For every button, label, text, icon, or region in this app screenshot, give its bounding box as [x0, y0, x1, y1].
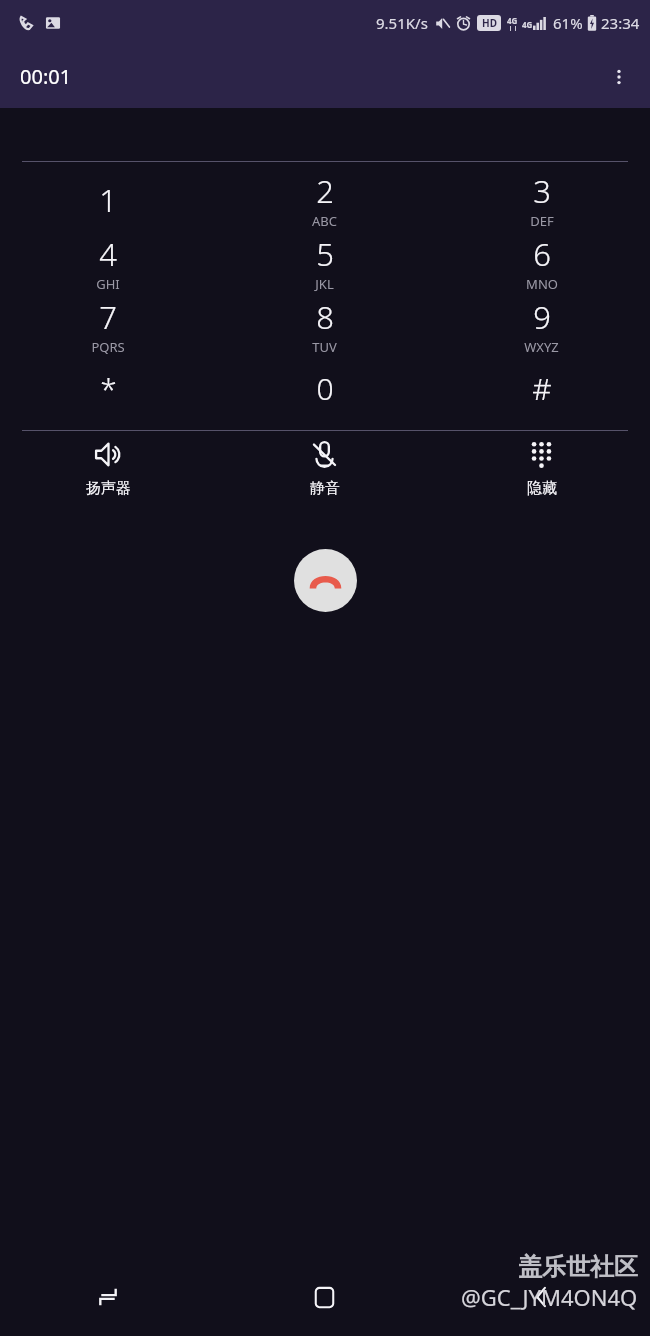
staticText: JKL [315, 275, 334, 293]
staticText: 2 [316, 170, 334, 212]
button[interactable]: 5 [216, 231, 433, 294]
button[interactable]: Recents [0, 1258, 216, 1336]
button[interactable]: 扬声器 [0, 439, 216, 507]
staticText: 1 [99, 179, 117, 221]
button[interactable]: 8 [216, 294, 433, 357]
staticText: 23:34 [601, 13, 640, 33]
staticText: 扬声器 [86, 479, 131, 498]
staticText: 0 [316, 368, 334, 409]
button[interactable]: Home [216, 1258, 433, 1336]
staticText: @GC_JYM4ON4Q [461, 1282, 638, 1312]
button[interactable]: 1 [0, 168, 216, 231]
staticText: 7 [99, 296, 117, 338]
staticText: 9.51K/s [376, 13, 428, 33]
button[interactable]: 2 [216, 168, 433, 231]
button[interactable]: 9 [433, 294, 650, 357]
button[interactable]: End call [294, 549, 357, 612]
staticText: 盖乐世社区 [518, 1252, 638, 1282]
staticText: HD [482, 16, 497, 30]
staticText: MNO [526, 275, 558, 293]
button[interactable]: 0 [216, 357, 433, 420]
button[interactable]: 3 [433, 168, 650, 231]
staticText: 00:01 [20, 63, 72, 90]
staticText: # [532, 368, 552, 409]
staticText: 9 [533, 296, 551, 338]
staticText: WXYZ [524, 338, 559, 356]
button[interactable]: 隐藏 [433, 439, 650, 507]
staticText: PQRS [91, 338, 125, 356]
staticText: ABC [312, 212, 337, 230]
staticText: 4G [507, 15, 518, 26]
button[interactable]: * [0, 357, 216, 420]
staticText: 4 [99, 233, 117, 275]
button[interactable]: 4 [0, 231, 216, 294]
button[interactable]: 6 [433, 231, 650, 294]
button[interactable]: 静音 [216, 439, 433, 507]
staticText: 3 [533, 170, 551, 212]
staticText: 5 [316, 233, 334, 275]
staticText: 6 [533, 233, 551, 275]
staticText: 61% [553, 13, 583, 33]
staticText: GHI [96, 275, 120, 293]
staticText: 8 [316, 296, 334, 338]
button[interactable]: More options [598, 56, 640, 98]
button[interactable]: Back [433, 1258, 650, 1336]
staticText: 4G [522, 19, 533, 30]
staticText: TUV [312, 338, 337, 356]
staticText: 静音 [310, 479, 340, 498]
button[interactable]: 7 [0, 294, 216, 357]
staticText: DEF [530, 212, 554, 230]
staticText: 隐藏 [527, 479, 557, 498]
staticText: * [100, 368, 117, 409]
button[interactable]: # [433, 357, 650, 420]
